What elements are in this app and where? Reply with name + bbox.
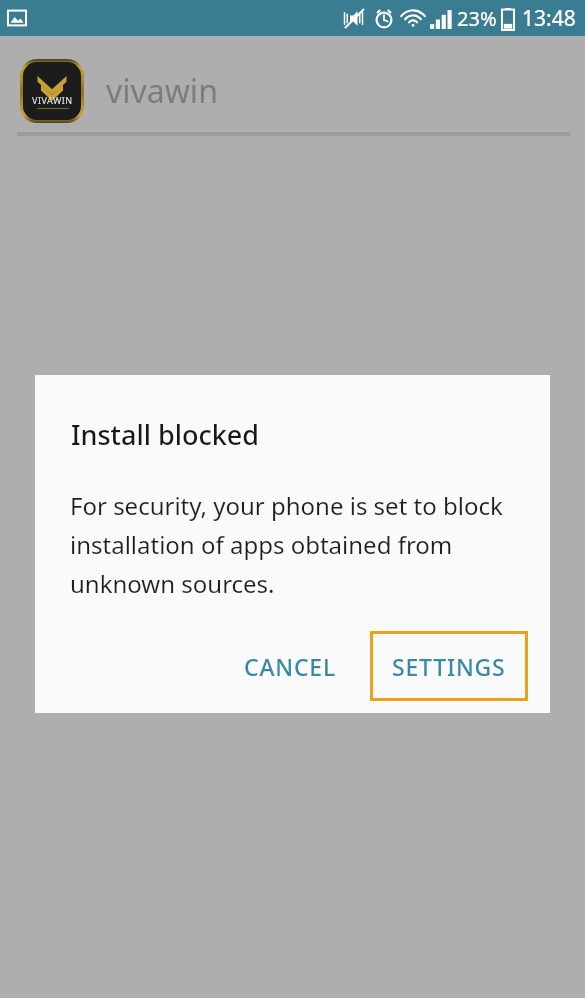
- button[interactable]: CANCEL: [220, 633, 361, 700]
- button[interactable]: SETTINGS: [370, 631, 528, 701]
- staticText: VIVAWIN: [32, 94, 73, 106]
- staticText: CANCEL: [244, 651, 337, 682]
- staticText: 13:48: [522, 4, 576, 33]
- staticText: 23%: [457, 5, 497, 32]
- other: Image notification: [7, 8, 27, 28]
- staticText: Install blocked: [71, 416, 260, 453]
- staticText: For security, your phone is set to block…: [70, 489, 522, 600]
- staticText: SETTINGS: [392, 651, 506, 682]
- other: vivawin app icon: [23, 62, 81, 120]
- staticText: vivawin: [106, 69, 218, 113]
